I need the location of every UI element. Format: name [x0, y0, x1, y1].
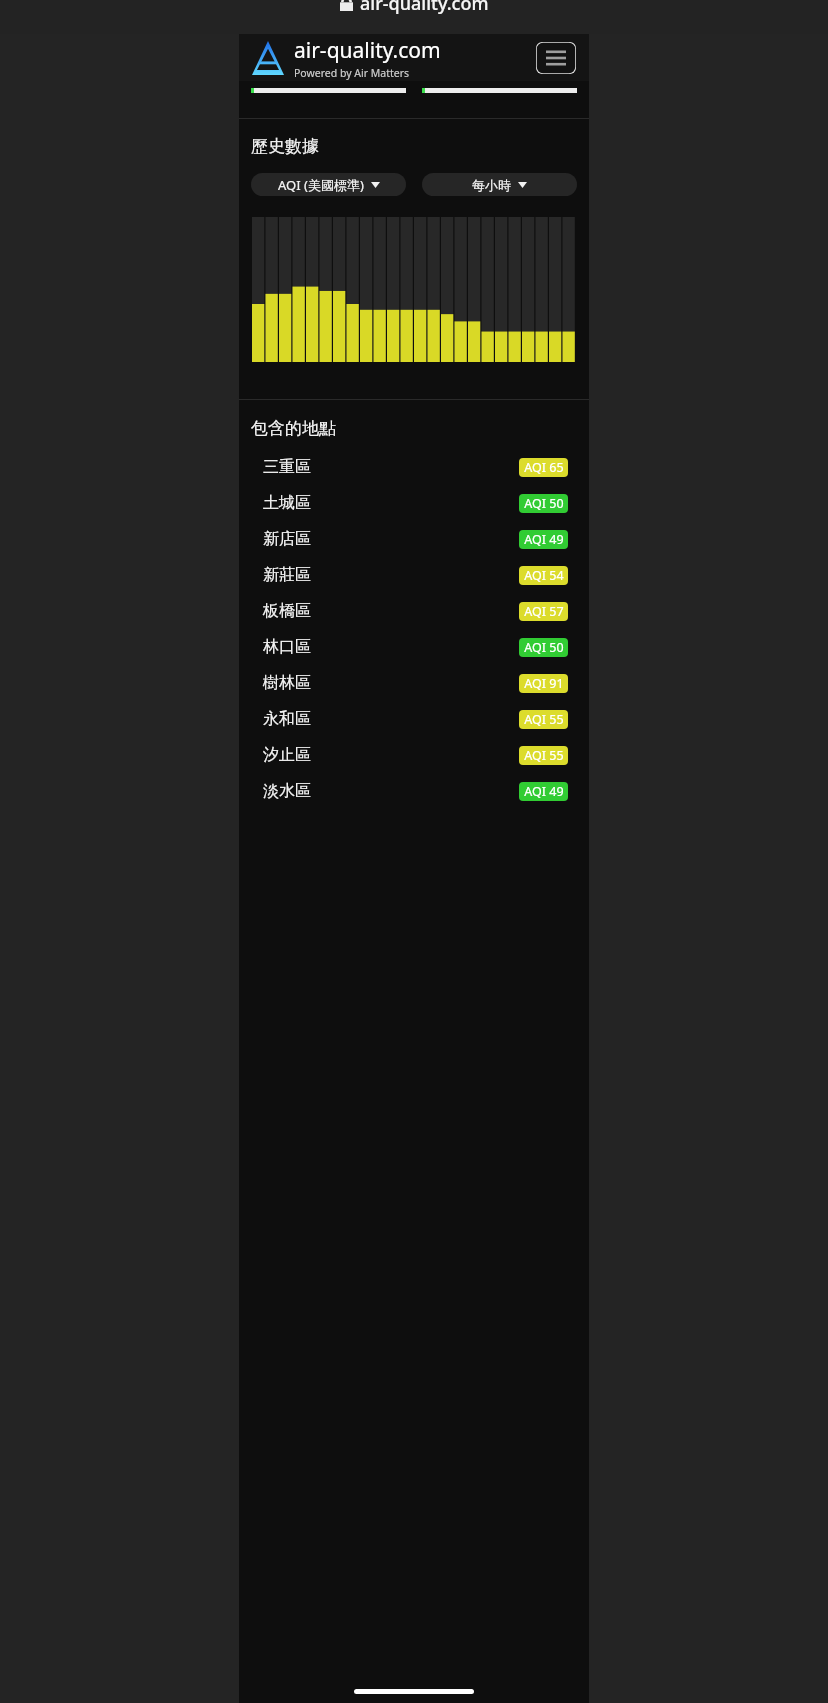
button[interactable]: 樹林區 [239, 665, 589, 701]
staticText: Powered by Air Matters [294, 66, 410, 80]
staticText: AQI 50 [524, 639, 564, 656]
button[interactable]: Menu [536, 42, 576, 74]
staticText: 淡水區 [263, 781, 311, 801]
staticText: AQI 91 [524, 675, 564, 692]
staticText: 永和區 [263, 709, 311, 729]
staticText: 新店區 [263, 529, 311, 549]
staticText: AQI 57 [524, 603, 564, 620]
staticText: 土城區 [263, 493, 311, 513]
staticText: 歷史數據 [251, 136, 319, 157]
staticText: 三重區 [263, 457, 311, 477]
staticText: 每小時 [472, 177, 511, 193]
staticText: 樹林區 [263, 673, 311, 693]
staticText: AQI 55 [524, 711, 564, 728]
button[interactable]: 板橋區 [239, 593, 589, 629]
staticText: 包含的地點 [251, 418, 336, 439]
staticText: air-quality.com [360, 0, 489, 16]
staticText: 板橋區 [263, 601, 311, 621]
button[interactable]: 永和區 [239, 701, 589, 737]
staticText: AQI 49 [524, 783, 564, 800]
staticText: AQI 54 [524, 567, 564, 584]
staticText: AQI 50 [524, 495, 564, 512]
staticText: 新莊區 [263, 565, 311, 585]
staticText: 汐止區 [263, 745, 311, 765]
staticText: AQI 55 [524, 747, 564, 764]
staticText: AQI (美國標準) [278, 176, 364, 194]
button[interactable]: 新店區 [239, 521, 589, 557]
button[interactable]: 新莊區 [239, 557, 589, 593]
button[interactable]: 三重區 [239, 449, 589, 485]
button[interactable]: AQI (美國標準) [251, 173, 406, 196]
staticText: AQI 49 [524, 531, 564, 548]
button[interactable]: 土城區 [239, 485, 589, 521]
button[interactable]: 汐止區 [239, 737, 589, 773]
button[interactable]: 每小時 [422, 173, 577, 196]
staticText: 林口區 [263, 637, 311, 657]
staticText: AQI 65 [524, 459, 564, 476]
button[interactable]: 林口區 [239, 629, 589, 665]
staticText: air-quality.com [294, 36, 441, 65]
button[interactable]: 淡水區 [239, 773, 589, 809]
